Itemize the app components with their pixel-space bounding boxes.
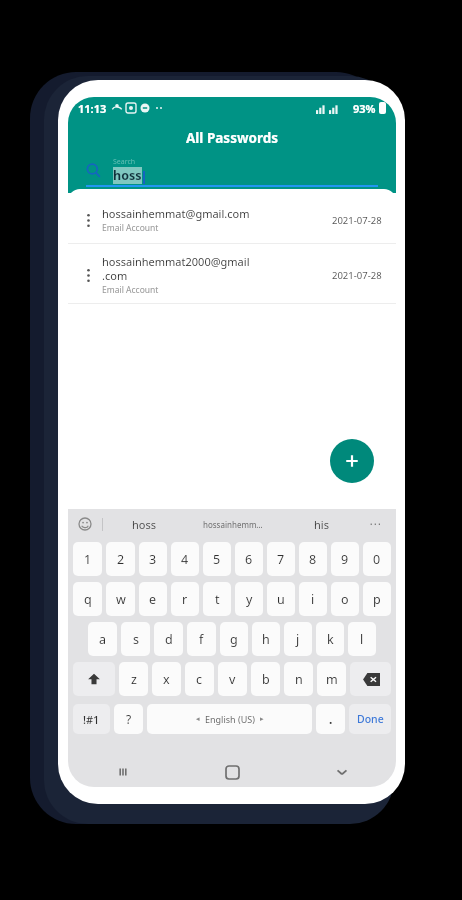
staticText: 0 xyxy=(373,551,381,568)
staticText: 2021-07-28 xyxy=(332,269,382,282)
staticText: t xyxy=(215,591,220,608)
staticText: ⋯ xyxy=(369,517,381,531)
staticText: u xyxy=(277,591,285,608)
staticText: g xyxy=(230,631,238,648)
staticText: v xyxy=(229,671,236,688)
staticText: 93% xyxy=(353,101,376,116)
staticText: Email Account xyxy=(102,222,159,234)
staticText: b xyxy=(262,671,270,688)
button[interactable]: n xyxy=(284,662,313,696)
staticText: Search xyxy=(113,157,136,167)
button[interactable]: 2 xyxy=(106,542,135,576)
button[interactable]: r xyxy=(171,582,199,616)
staticText: a xyxy=(99,631,107,648)
button[interactable]: 4 xyxy=(171,542,199,576)
staticText: d xyxy=(165,631,173,648)
button[interactable]: y xyxy=(235,582,263,616)
button[interactable]: his xyxy=(280,509,362,539)
staticText: All Passwords xyxy=(186,129,278,147)
button[interactable]: a xyxy=(88,622,117,656)
button[interactable]: hossainhemm… xyxy=(185,509,280,539)
staticText: hoss xyxy=(132,517,156,532)
staticText: k xyxy=(327,631,334,648)
button[interactable]: Home xyxy=(178,757,287,787)
staticText: hossainhemmat@gmail.com xyxy=(102,206,250,221)
button[interactable]: h xyxy=(252,622,280,656)
button[interactable]: Done xyxy=(349,704,391,734)
staticText: 8 xyxy=(309,551,317,568)
button[interactable]: 5 xyxy=(203,542,231,576)
staticText: 11:13 xyxy=(78,101,107,116)
button[interactable]: 7 xyxy=(267,542,295,576)
staticText: Email Account xyxy=(102,284,159,296)
staticText: e xyxy=(149,591,157,608)
button[interactable]: More suggestions xyxy=(362,509,388,539)
button[interactable]: b xyxy=(251,662,280,696)
button[interactable]: e xyxy=(139,582,167,616)
button[interactable]: u xyxy=(267,582,295,616)
button[interactable]: hoss xyxy=(103,509,185,539)
staticText: r xyxy=(182,591,188,608)
button[interactable]: !#1 xyxy=(73,704,110,734)
button[interactable]: ? xyxy=(114,704,143,734)
button[interactable]: p xyxy=(363,582,391,616)
button[interactable] xyxy=(73,662,115,696)
button[interactable]: 3 xyxy=(139,542,167,576)
button[interactable]: 6 xyxy=(235,542,263,576)
button[interactable]: l xyxy=(348,622,376,656)
staticText: q xyxy=(84,591,92,608)
button[interactable]: Recents xyxy=(68,757,178,787)
button[interactable] xyxy=(350,662,391,696)
button[interactable]: v xyxy=(218,662,247,696)
staticText: o xyxy=(341,591,349,608)
staticText: ▸ xyxy=(260,715,264,723)
staticText: ? xyxy=(126,711,132,727)
staticText: 7 xyxy=(277,551,285,568)
button[interactable]: t xyxy=(203,582,231,616)
staticText: h xyxy=(262,631,270,648)
button[interactable]: 8 xyxy=(299,542,327,576)
button[interactable]: g xyxy=(220,622,248,656)
staticText: j xyxy=(296,631,300,648)
button[interactable]: w xyxy=(106,582,135,616)
staticText: f xyxy=(199,631,204,648)
button[interactable]: More options xyxy=(68,197,396,243)
button[interactable]: 9 xyxy=(331,542,359,576)
button[interactable]: . xyxy=(316,704,345,734)
staticText: z xyxy=(131,671,137,688)
staticText: hoss xyxy=(113,167,142,184)
button[interactable]: m xyxy=(317,662,346,696)
staticText: w xyxy=(116,591,126,608)
button[interactable]: More options xyxy=(68,247,396,303)
button[interactable]: x xyxy=(152,662,181,696)
button[interactable]: k xyxy=(316,622,344,656)
button[interactable]: s xyxy=(121,622,150,656)
button[interactable]: Emoji xyxy=(76,515,94,533)
button[interactable]: 1 xyxy=(73,542,102,576)
button[interactable]: d xyxy=(154,622,183,656)
staticText: x xyxy=(163,671,170,688)
other: Search xyxy=(86,163,101,178)
button[interactable]: i xyxy=(299,582,327,616)
staticText: . xyxy=(329,711,333,727)
staticText: y xyxy=(246,591,253,608)
staticText: 4 xyxy=(181,551,189,568)
button[interactable]: 0 xyxy=(363,542,391,576)
button[interactable]: f xyxy=(187,622,216,656)
button[interactable]: j xyxy=(284,622,312,656)
staticText: English (US) xyxy=(205,713,255,725)
button[interactable]: z xyxy=(119,662,148,696)
button[interactable]: Back xyxy=(287,757,396,787)
button[interactable]: More options xyxy=(74,247,102,303)
button[interactable]: Add password xyxy=(330,439,374,483)
button[interactable]: c xyxy=(185,662,214,696)
button[interactable]: o xyxy=(331,582,359,616)
staticText: !#1 xyxy=(83,712,100,727)
button[interactable]: More options xyxy=(74,197,102,243)
staticText: hossainhemmat2000@gmail .com xyxy=(102,254,250,283)
staticText: s xyxy=(133,631,139,648)
button[interactable]: q xyxy=(73,582,102,616)
button[interactable]: Search xyxy=(68,153,396,187)
staticText: 2021-07-28 xyxy=(332,214,382,227)
button[interactable]: ◂ xyxy=(147,704,312,734)
